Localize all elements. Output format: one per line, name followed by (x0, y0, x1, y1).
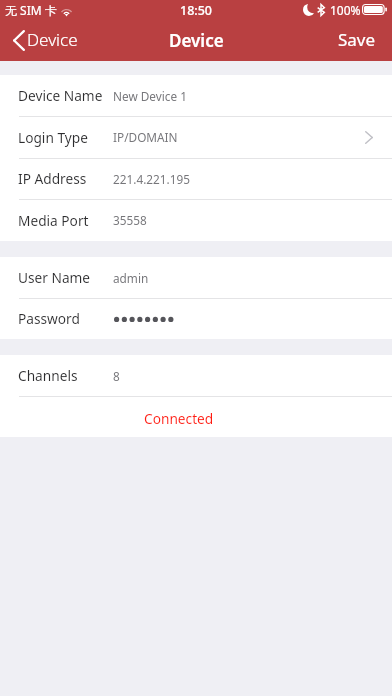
button[interactable]: Media Port (0, 199, 392, 241)
button[interactable]: IP Address (0, 158, 392, 199)
staticText: admin (113, 270, 149, 286)
staticText: 35558 (113, 212, 147, 228)
staticText: New Device 1 (113, 88, 187, 104)
staticText: User Name (18, 268, 91, 287)
button[interactable]: Channels (0, 355, 392, 396)
staticText: Login Type (18, 128, 88, 147)
button[interactable]: User Name (0, 257, 392, 298)
staticText: Device (27, 28, 78, 51)
button[interactable]: Device Name (0, 75, 392, 116)
button[interactable]: Back to Device (6, 20, 84, 61)
staticText: Media Port (18, 211, 89, 230)
staticText: 100% (330, 2, 361, 18)
staticText: Device Name (18, 86, 103, 105)
staticText: Device (169, 29, 224, 52)
staticText: IP Address (18, 169, 87, 188)
staticText: IP/DOMAIN (113, 129, 178, 145)
staticText: Connected (144, 409, 214, 428)
staticText: Save (338, 28, 376, 51)
button[interactable]: Login Type (0, 116, 392, 158)
button[interactable]: Save (325, 20, 392, 61)
staticText: 18:50 (180, 2, 213, 19)
button[interactable]: Connected (0, 396, 392, 437)
staticText: 8 (113, 368, 120, 384)
button[interactable]: Password (0, 298, 392, 339)
staticText: 无 SIM 卡 (5, 2, 57, 18)
staticText: 221.4.221.195 (113, 171, 190, 187)
staticText: Channels (18, 366, 78, 385)
staticText: Password (18, 309, 80, 328)
